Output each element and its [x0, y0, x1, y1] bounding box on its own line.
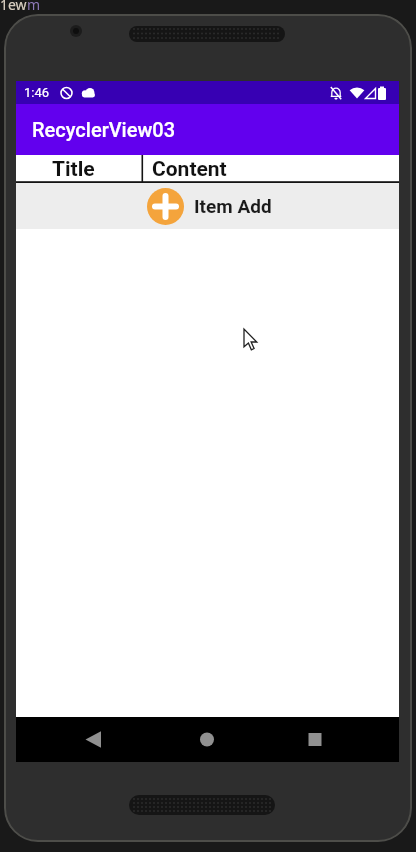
- staticText: Content: [152, 157, 227, 182]
- staticText: Title: [52, 157, 95, 182]
- staticText: RecyclerView03: [32, 118, 176, 141]
- staticText: Item Add: [194, 195, 272, 217]
- staticText: m: [27, 0, 41, 14]
- button[interactable]: Item Add: [16, 183, 399, 229]
- button[interactable]: [187, 719, 227, 759]
- staticText: 1ew: [0, 0, 27, 14]
- button[interactable]: [73, 719, 113, 759]
- staticText: 1:46: [24, 85, 50, 100]
- button[interactable]: [295, 719, 335, 759]
